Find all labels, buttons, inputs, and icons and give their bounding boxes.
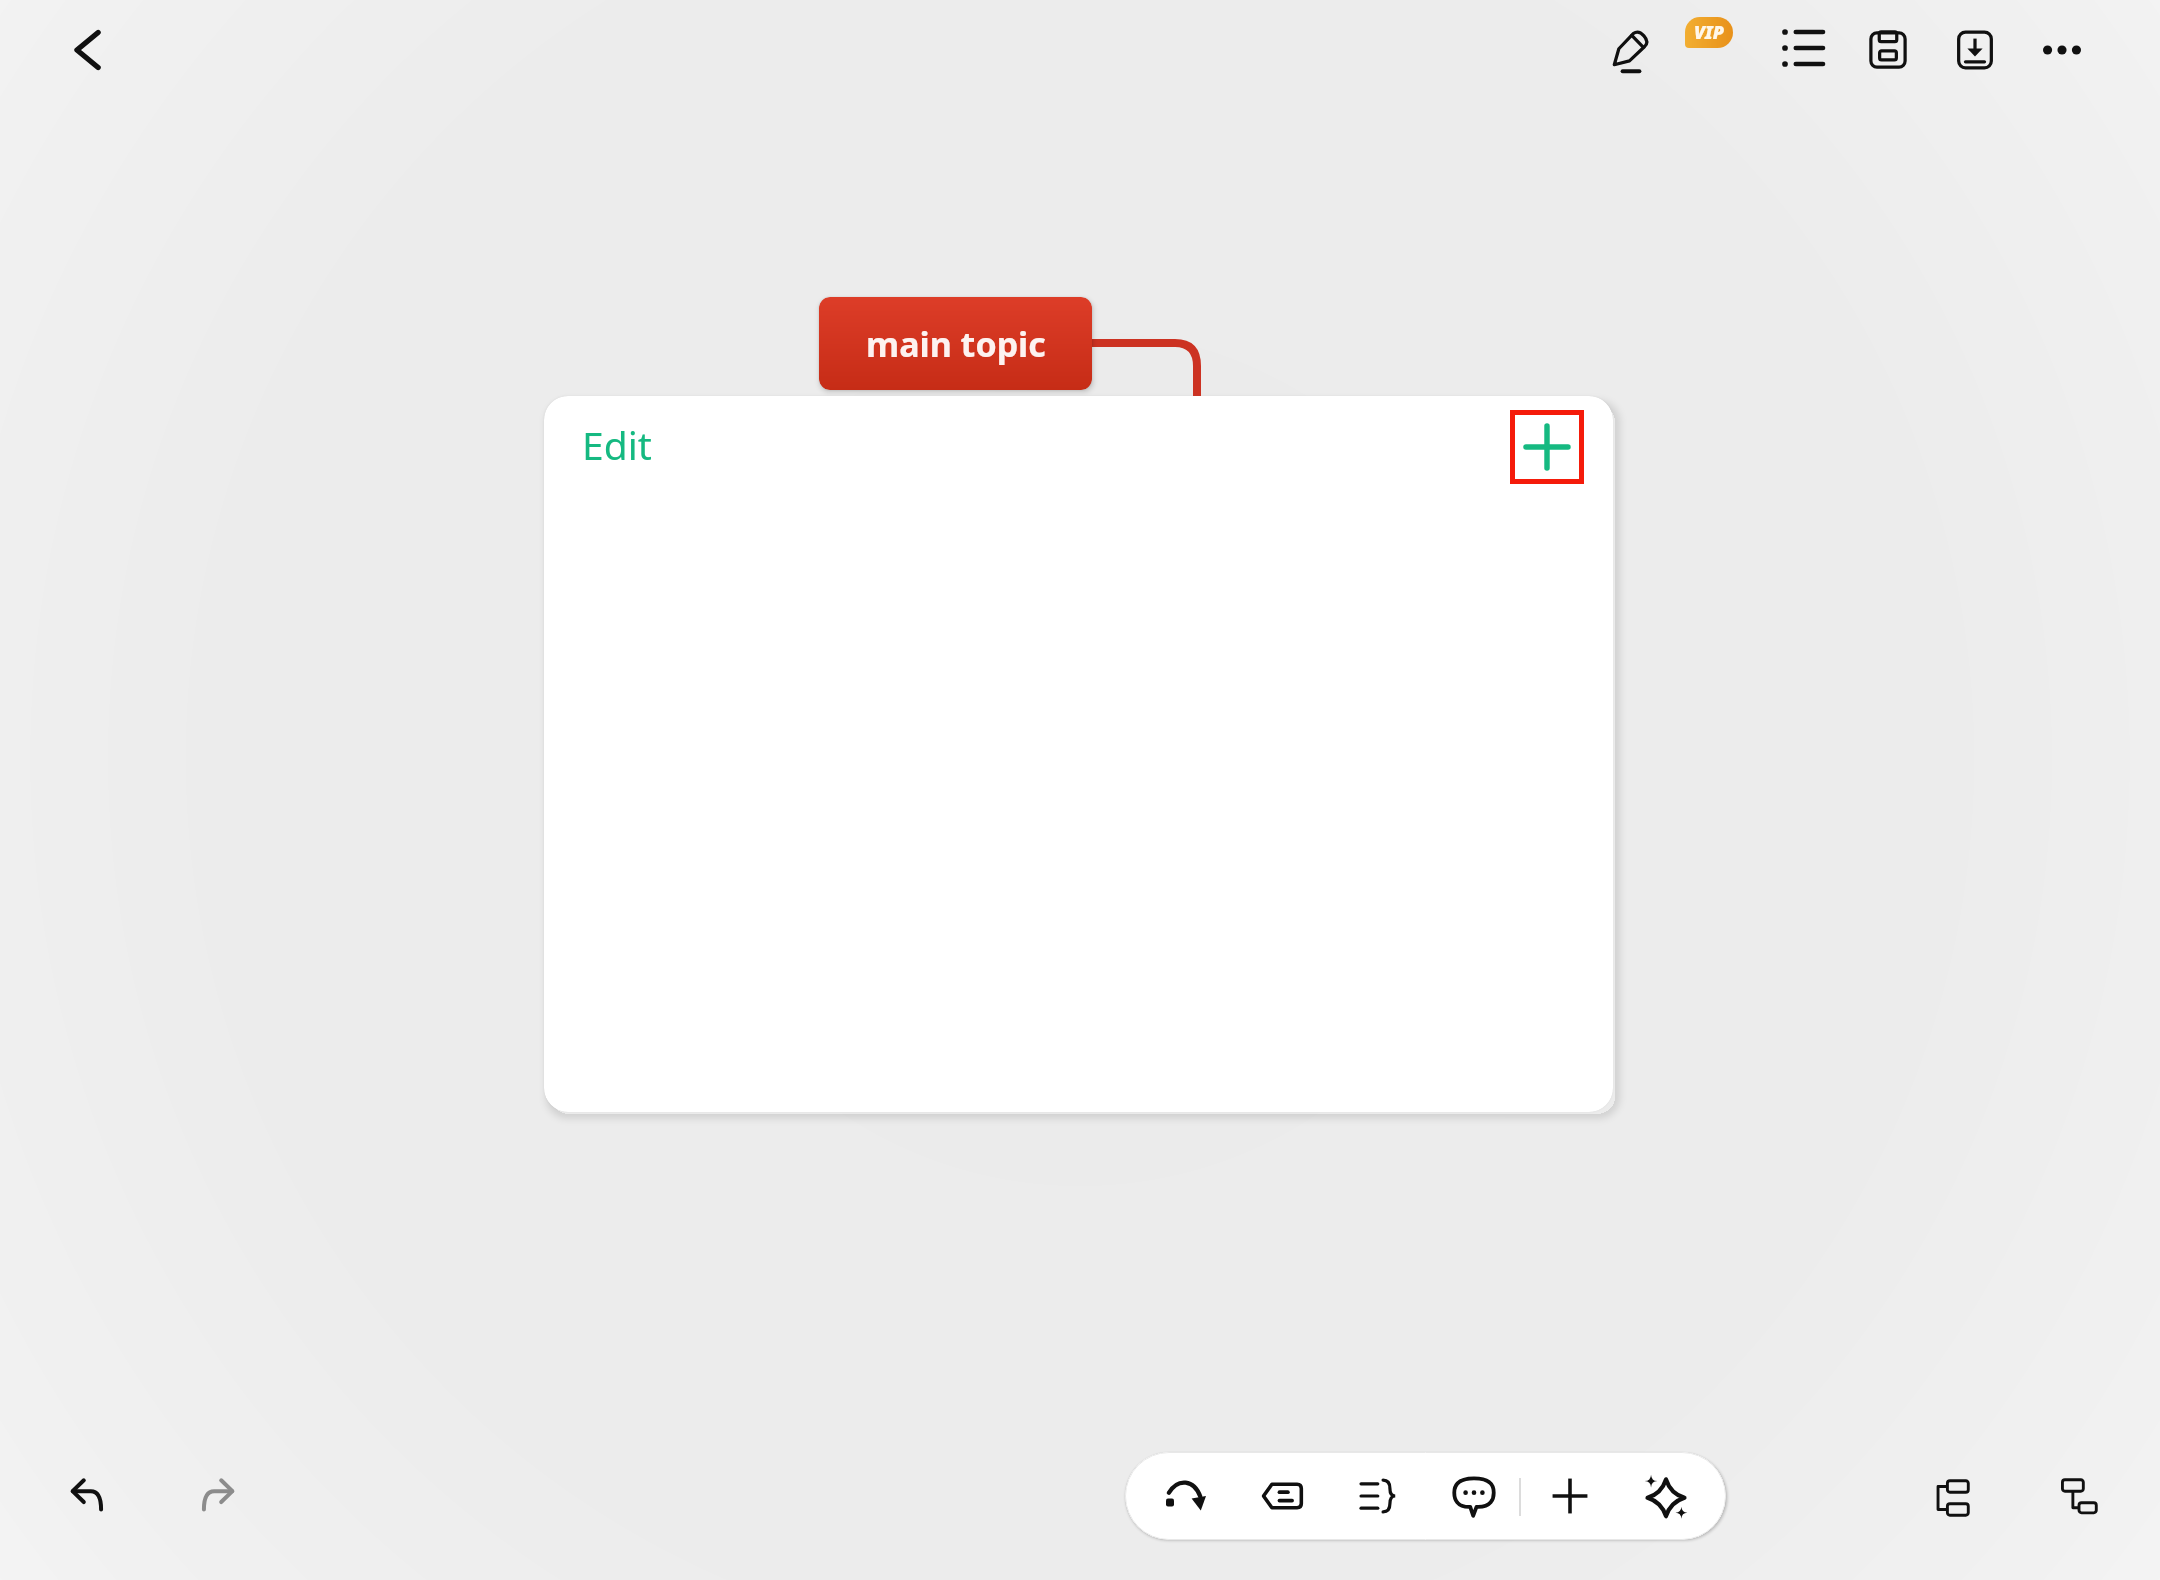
button[interactable]: Undo: [44, 1452, 130, 1538]
button[interactable]: Edit: [582, 418, 652, 471]
button[interactable]: Export: [1935, 10, 2015, 90]
staticText: main topic: [866, 321, 1046, 367]
button[interactable]: More options: [2022, 10, 2102, 90]
button[interactable]: Add node: [1533, 1459, 1607, 1533]
button[interactable]: AI assistant: [1629, 1459, 1703, 1533]
button[interactable]: Org chart layout: [2039, 1457, 2119, 1537]
button[interactable]: Back: [45, 7, 131, 93]
button[interactable]: VIP: [1685, 17, 1733, 48]
button[interactable]: main topic: [819, 297, 1092, 390]
button[interactable]: Redo: [175, 1452, 261, 1538]
button[interactable]: Outline: [1763, 8, 1843, 88]
button[interactable]: Save: [1848, 10, 1928, 90]
button[interactable]: Tree layout: [1911, 1458, 1991, 1538]
button[interactable]: Summary: [1340, 1459, 1414, 1533]
button[interactable]: Relationship: [1149, 1459, 1223, 1533]
staticText: VIP: [1694, 20, 1724, 45]
button[interactable]: Handwriting: [1591, 8, 1671, 88]
button[interactable]: Add child topic: [1510, 410, 1584, 484]
button[interactable]: Label: [1245, 1459, 1319, 1533]
button[interactable]: Note: [1437, 1459, 1511, 1533]
